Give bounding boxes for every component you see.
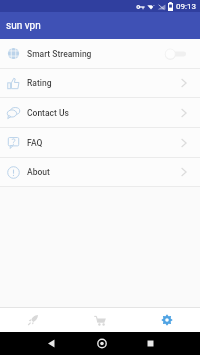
staticText: 09:13 (176, 2, 196, 11)
staticText: Rating (27, 78, 52, 88)
staticText: Contact Us (27, 108, 69, 118)
staticText: Smart Streaming (27, 49, 92, 59)
staticText: About (27, 167, 50, 177)
button[interactable]: Rating (0, 69, 200, 97)
staticText: sun vpn (6, 20, 41, 32)
button[interactable]: FAQ (0, 128, 200, 157)
staticText: FAQ (27, 138, 43, 148)
button[interactable]: Store (66, 308, 133, 332)
button[interactable]: About (0, 158, 200, 186)
button[interactable]: Settings (133, 308, 200, 332)
button[interactable]: Contact Us (0, 98, 200, 127)
button[interactable]: Smart Streaming (0, 39, 200, 68)
button[interactable]: Boost (0, 308, 66, 332)
